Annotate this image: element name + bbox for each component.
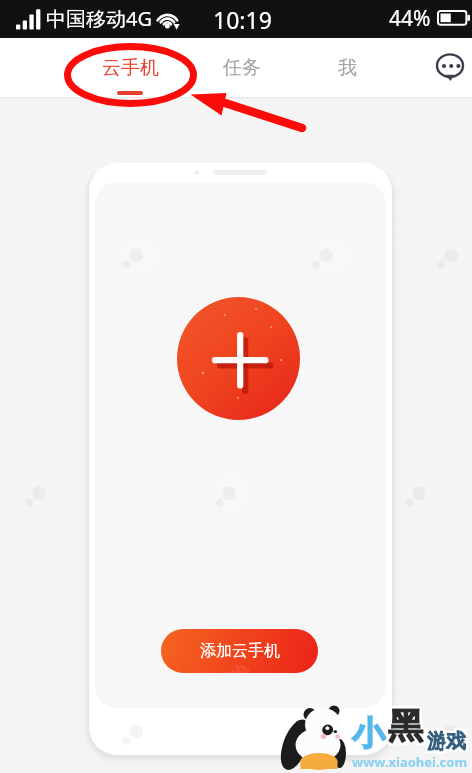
staticText: 游 [425,729,445,754]
staticText: www.xiaohei.com [352,753,468,771]
staticText: 游 [429,731,449,756]
staticText: 黑 [386,706,421,750]
staticText: 10:19 [213,4,272,35]
staticText: 九游戏 [360,659,447,719]
staticText: 黑 [388,706,423,750]
staticText: 黑 [390,706,425,750]
staticText: 小 [350,715,383,757]
staticText: 戏 [444,727,464,752]
staticText: 戏 [444,729,464,754]
button[interactable]: 云手机 [94,38,166,98]
staticText: 戏 [446,729,466,754]
staticText: 戏 [446,731,466,756]
staticText: 黑 [388,704,423,748]
staticText: 黑 [390,702,425,746]
staticText: WWW.9UCC [368,688,456,736]
staticText: 小 [352,715,385,757]
staticText: 小 [354,715,387,757]
staticText: 云手机 [102,56,159,80]
staticText: 我 [338,56,357,80]
button[interactable]: Add cloud phone [177,297,300,420]
button[interactable]: 添加云手机 [161,629,318,673]
staticText: 黑 [386,704,421,748]
staticText: 任务 [223,56,261,80]
staticText: 44% [389,4,431,33]
staticText: 小 [350,711,383,753]
staticText: WWW.9UCC [368,212,456,260]
staticText: WWW.9UCC [178,688,266,736]
staticText: 中国移动4G [46,5,152,32]
staticText: 小 [352,713,385,755]
staticText: 游 [429,729,449,754]
staticText: 戏 [448,727,468,752]
staticText: 九游戏 [73,421,160,481]
staticText: 游 [427,727,447,752]
staticText: WWW.9UCC [81,450,169,498]
staticText: 游 [425,727,445,752]
staticText: 戏 [448,731,468,756]
button[interactable]: Customer service [428,46,472,90]
staticText: 游 [427,729,447,754]
staticText: 游 [429,727,449,752]
staticText: 小 [352,711,385,753]
staticText: 黑 [386,702,421,746]
staticText: 添加云手机 [200,641,280,661]
staticText: 游 [425,731,445,756]
staticText: 九游戏 [360,183,447,243]
button[interactable]: 我 [311,38,383,98]
staticText: 黑 [390,704,425,748]
staticText: 戏 [444,731,464,756]
staticText: 游 [427,731,447,756]
button[interactable]: 任务 [206,38,278,98]
staticText: 戏 [446,727,466,752]
staticText: 小 [354,713,387,755]
staticText: 小 [350,713,383,755]
staticText: 小 [354,711,387,753]
staticText: 九游戏 [170,659,257,719]
staticText: 戏 [448,729,468,754]
staticText: 黑 [388,702,423,746]
